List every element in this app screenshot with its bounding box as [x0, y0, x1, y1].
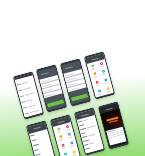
button[interactable]	[107, 128, 125, 144]
button[interactable]	[27, 122, 56, 156]
button[interactable]	[79, 119, 96, 127]
button[interactable]	[89, 69, 100, 80]
button[interactable]	[18, 83, 36, 93]
button[interactable]	[42, 85, 61, 93]
button[interactable]	[99, 103, 128, 148]
button[interactable]	[75, 109, 104, 154]
button[interactable]	[71, 93, 88, 102]
button[interactable]	[97, 67, 109, 78]
button[interactable]	[61, 60, 90, 105]
button[interactable]	[68, 147, 80, 156]
button[interactable]	[14, 73, 43, 118]
button[interactable]	[67, 83, 87, 92]
button[interactable]	[77, 115, 95, 124]
button[interactable]	[85, 53, 114, 98]
button[interactable]	[30, 129, 47, 138]
button[interactable]	[41, 80, 60, 89]
button[interactable]	[53, 125, 63, 135]
button[interactable]	[34, 144, 51, 153]
button[interactable]	[81, 127, 98, 135]
button[interactable]	[65, 74, 84, 83]
button[interactable]	[80, 123, 97, 131]
button[interactable]	[61, 122, 73, 132]
button[interactable]	[83, 135, 100, 143]
button[interactable]	[85, 142, 102, 151]
button[interactable]	[51, 116, 80, 156]
button[interactable]	[35, 149, 53, 156]
button[interactable]	[95, 59, 107, 69]
button[interactable]	[21, 95, 39, 105]
button[interactable]	[39, 75, 59, 84]
button[interactable]	[59, 150, 70, 156]
button[interactable]	[82, 131, 99, 139]
button[interactable]	[31, 134, 49, 143]
button[interactable]	[91, 78, 102, 89]
button[interactable]	[55, 132, 66, 143]
button[interactable]	[87, 62, 97, 72]
button[interactable]	[93, 87, 104, 98]
button[interactable]	[43, 89, 63, 98]
button[interactable]	[16, 77, 34, 88]
button[interactable]	[32, 139, 50, 148]
button[interactable]	[102, 84, 114, 95]
button[interactable]	[84, 138, 101, 147]
button[interactable]	[47, 99, 64, 108]
button[interactable]	[22, 100, 40, 111]
button[interactable]	[36, 153, 54, 156]
button[interactable]	[57, 141, 68, 152]
button[interactable]	[100, 75, 112, 87]
button[interactable]	[66, 79, 85, 87]
button[interactable]	[63, 69, 83, 78]
button[interactable]	[19, 89, 37, 99]
button[interactable]	[66, 138, 78, 150]
button[interactable]	[24, 106, 42, 116]
button[interactable]	[37, 66, 66, 111]
button[interactable]	[63, 130, 75, 141]
